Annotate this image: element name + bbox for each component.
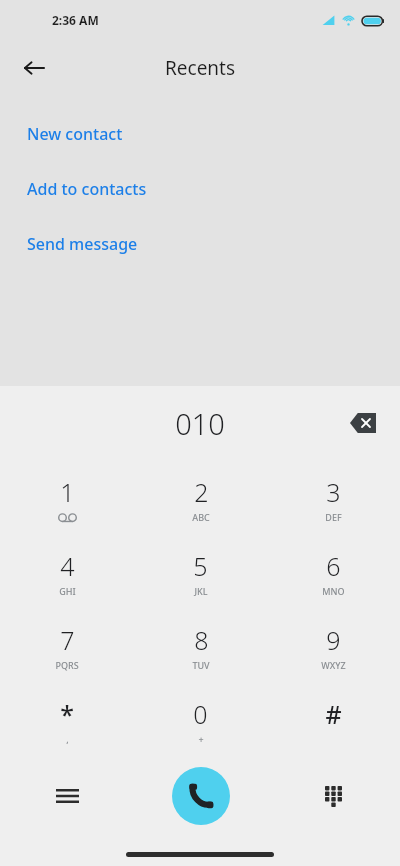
button[interactable]: Send message: [0, 216, 400, 271]
staticText: 4: [60, 549, 75, 583]
staticText: 9: [326, 623, 341, 657]
staticText: 0: [193, 697, 208, 731]
staticText: *: [60, 697, 74, 731]
staticText: 6: [326, 549, 341, 583]
staticText: WXYZ: [321, 659, 346, 671]
button[interactable]: #: [267, 684, 400, 758]
staticText: 2:36 AM: [52, 12, 99, 28]
staticText: Add to contacts: [27, 178, 147, 200]
staticText: 8: [194, 623, 209, 657]
button[interactable]: Add to contacts: [0, 161, 400, 216]
staticText: +: [198, 733, 204, 745]
button[interactable]: 6: [267, 536, 400, 610]
staticText: New contact: [27, 123, 123, 145]
button[interactable]: 1: [0, 462, 134, 536]
staticText: DEF: [325, 511, 342, 523]
button[interactable]: 7: [0, 610, 134, 684]
button[interactable]: New contact: [0, 106, 400, 161]
button[interactable]: 5: [134, 536, 267, 610]
staticText: 010: [175, 404, 225, 443]
staticText: 7: [60, 623, 75, 657]
button[interactable]: 9: [267, 610, 400, 684]
staticText: 2: [194, 475, 209, 509]
button[interactable]: Call: [172, 767, 230, 825]
button[interactable]: 2: [134, 462, 267, 536]
staticText: 3: [326, 475, 341, 509]
button[interactable]: Backspace: [340, 400, 386, 446]
staticText: 5: [193, 549, 208, 583]
button[interactable]: Menu: [0, 748, 134, 844]
button[interactable]: *: [0, 684, 134, 758]
staticText: TUV: [192, 659, 210, 671]
staticText: MNO: [322, 585, 345, 597]
staticText: Recents: [165, 55, 236, 81]
staticText: 1: [60, 475, 75, 509]
staticText: GHI: [59, 585, 76, 597]
button[interactable]: Back: [12, 46, 56, 90]
staticText: #: [325, 697, 342, 731]
staticText: ,: [66, 733, 69, 745]
button[interactable]: Dialpad: [267, 748, 400, 844]
button[interactable]: 8: [134, 610, 267, 684]
staticText: ABC: [192, 511, 210, 523]
button[interactable]: 3: [267, 462, 400, 536]
staticText: PQRS: [55, 659, 79, 671]
staticText: JKL: [194, 585, 208, 597]
staticText: Send message: [27, 233, 138, 255]
button[interactable]: 4: [0, 536, 134, 610]
button[interactable]: 0: [134, 684, 267, 758]
